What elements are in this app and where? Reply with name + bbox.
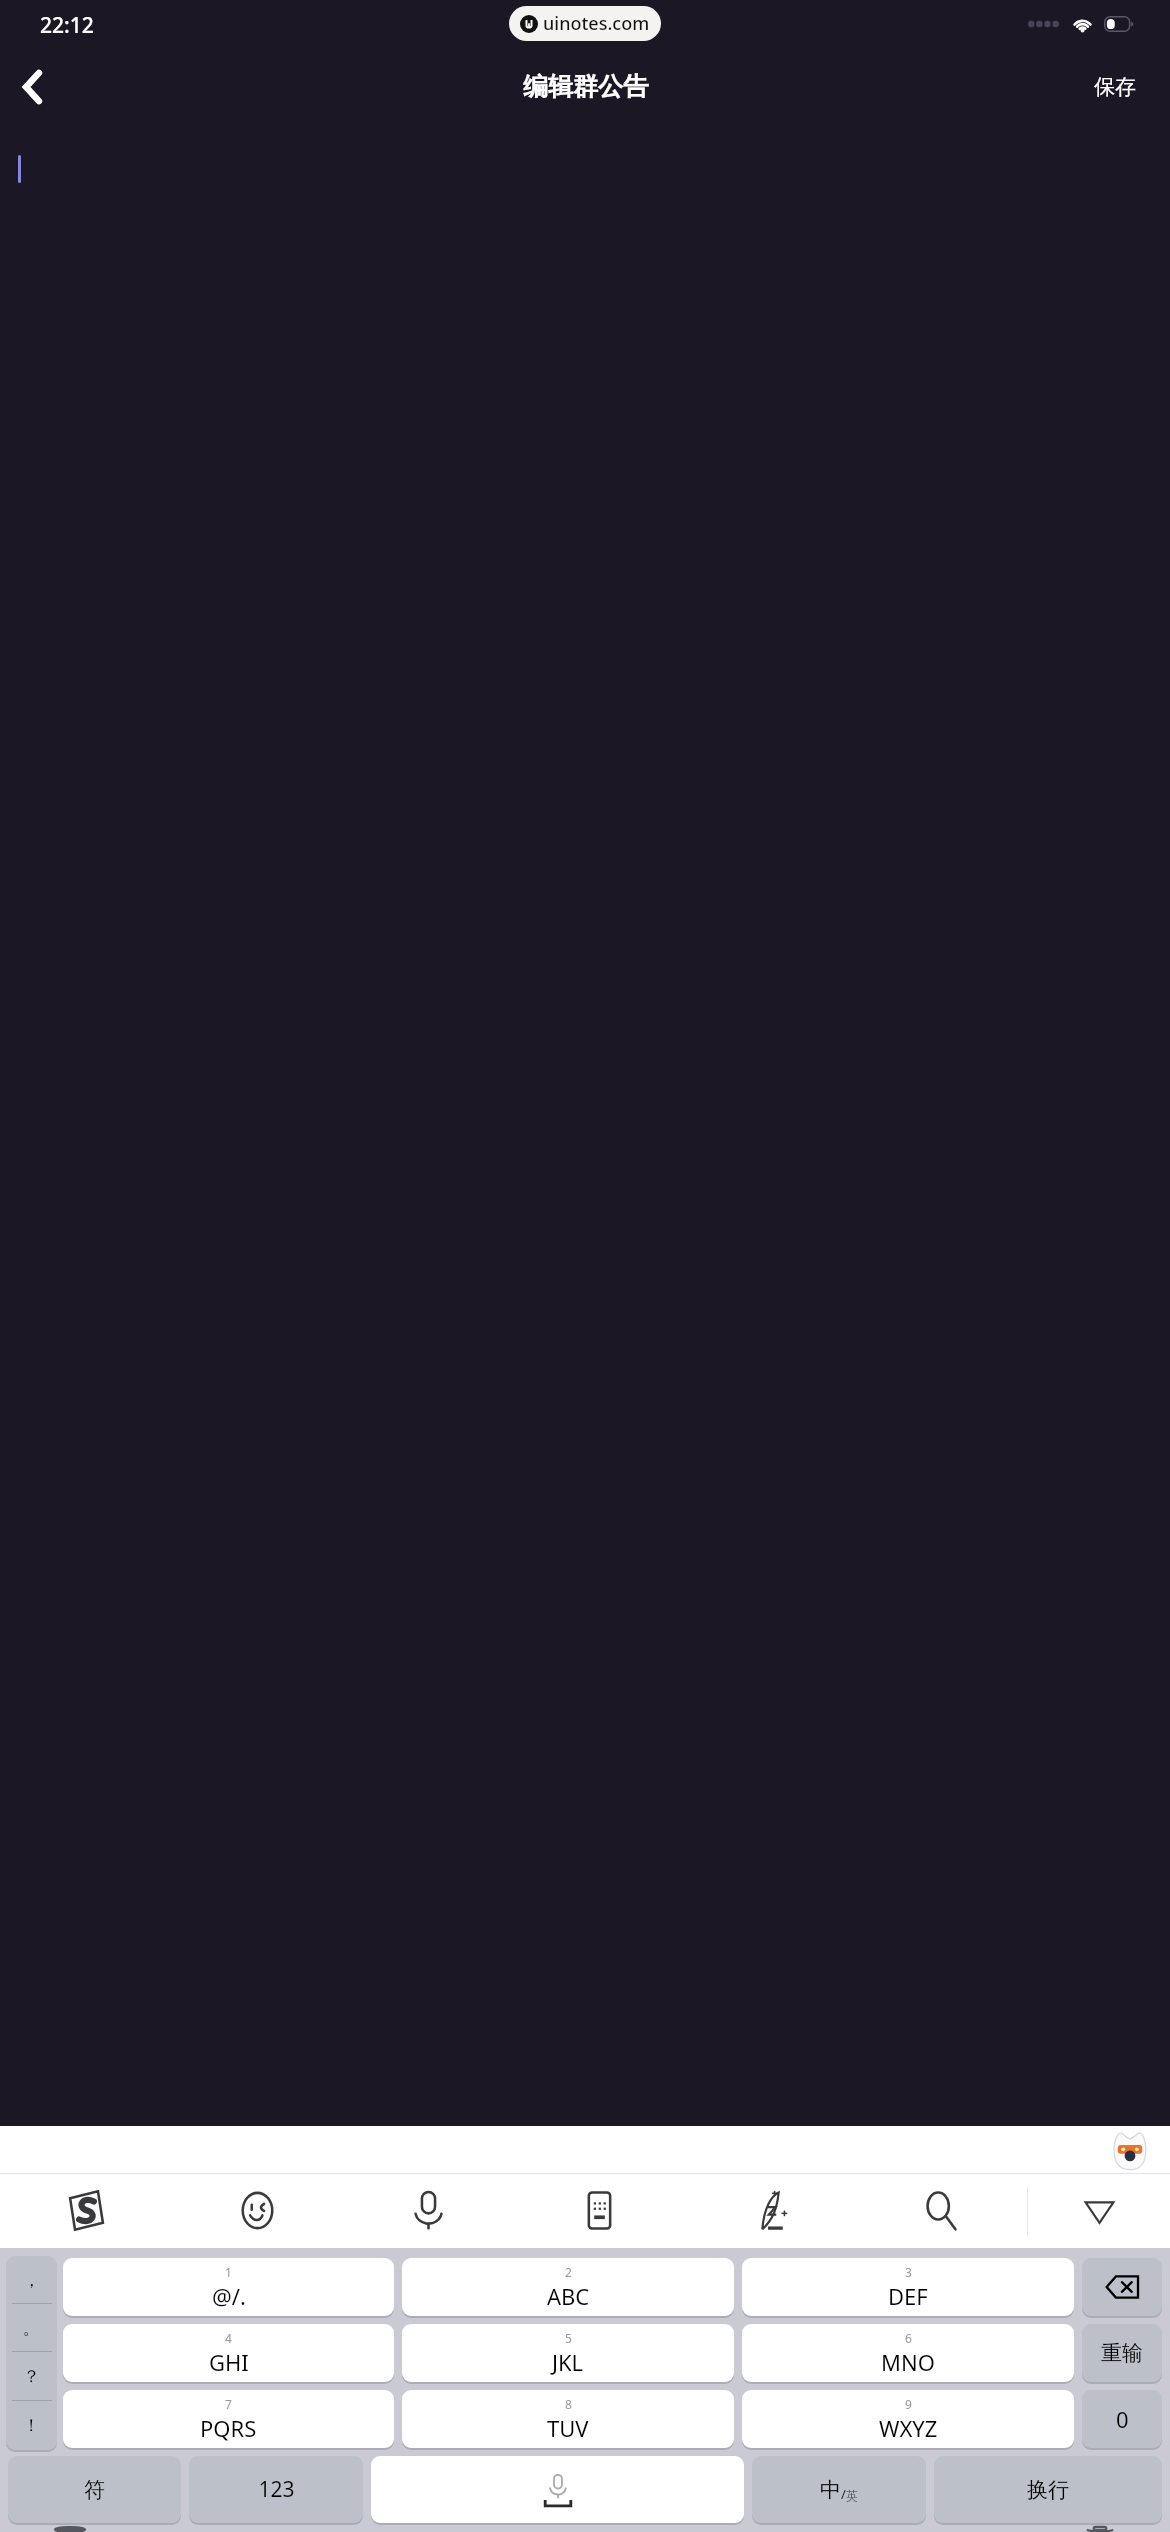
button[interactable]: 123	[189, 2456, 363, 2523]
button[interactable]: Back	[0, 55, 64, 119]
staticText: 9	[905, 2396, 912, 2412]
button[interactable]: 2	[402, 2258, 734, 2316]
button[interactable]: 1	[63, 2258, 394, 2316]
button[interactable]: Emoji	[172, 2173, 343, 2248]
button[interactable]: Sogou	[0, 2173, 172, 2248]
staticText: 保存	[1094, 74, 1136, 100]
button[interactable]: 4	[63, 2324, 394, 2382]
button[interactable]: Voice input	[1078, 2527, 1122, 2532]
staticText: 2	[565, 2264, 572, 2280]
staticText: 3	[905, 2264, 912, 2280]
button[interactable]: ？	[6, 2352, 57, 2401]
button[interactable]: Collapse keyboard	[1028, 2173, 1170, 2248]
button[interactable]: 0	[1082, 2390, 1162, 2448]
button[interactable]: 重输	[1082, 2324, 1162, 2382]
staticText: 符	[84, 2477, 105, 2503]
staticText: 7	[225, 2396, 232, 2412]
staticText: GHI	[209, 2347, 249, 2377]
staticText: uinotes.com	[543, 11, 650, 36]
staticText: PQRS	[200, 2413, 257, 2443]
staticText: 22:12	[40, 11, 94, 40]
staticText: 重输	[1101, 2340, 1143, 2366]
button[interactable]: 5	[402, 2324, 734, 2382]
button[interactable]: 。	[6, 2304, 57, 2352]
button[interactable]: ，	[6, 2256, 57, 2304]
staticText: 中	[820, 2477, 841, 2503]
staticText: ，	[23, 2270, 40, 2291]
staticText: ！	[23, 2415, 40, 2436]
staticText: 1	[225, 2264, 232, 2280]
button[interactable]: Space	[371, 2456, 744, 2523]
button[interactable]: Backspace	[1082, 2258, 1162, 2316]
staticText: 英	[846, 2488, 858, 2503]
button[interactable]: Voice input	[343, 2173, 514, 2248]
staticText: 6	[905, 2330, 912, 2346]
staticText: 4	[225, 2330, 232, 2346]
button[interactable]: 7	[63, 2390, 394, 2448]
staticText: @/.	[212, 2281, 246, 2311]
staticText: TUV	[547, 2413, 589, 2443]
staticText: MNO	[881, 2347, 935, 2377]
staticText: 8	[565, 2396, 572, 2412]
button[interactable]: Sogou assistant	[1112, 2129, 1148, 2171]
button[interactable]: ！	[6, 2401, 57, 2450]
button[interactable]: 中	[752, 2456, 926, 2523]
button[interactable]: Handwriting	[685, 2173, 856, 2248]
button[interactable]: 保存	[1084, 68, 1146, 106]
staticText: 编辑群公告	[523, 71, 648, 102]
staticText: 0	[1116, 2404, 1129, 2434]
button[interactable]: 8	[402, 2390, 734, 2448]
staticText: WXYZ	[879, 2413, 938, 2443]
staticText: 123	[258, 2475, 295, 2504]
button[interactable]: Switch language	[48, 2527, 92, 2532]
button[interactable]: 符	[8, 2456, 181, 2523]
staticText: JKL	[552, 2347, 584, 2377]
staticText: 换行	[1027, 2477, 1069, 2503]
staticText: DEF	[888, 2281, 928, 2311]
button[interactable]: 6	[742, 2324, 1074, 2382]
staticText: ？	[23, 2366, 40, 2387]
button[interactable]: 9	[742, 2390, 1074, 2448]
button[interactable]: Keyboard layout	[514, 2173, 685, 2248]
button[interactable]: Search	[856, 2173, 1027, 2248]
staticText: ABC	[547, 2281, 590, 2311]
button[interactable]: 3	[742, 2258, 1074, 2316]
staticText: /	[841, 2485, 846, 2503]
button[interactable]: 换行	[934, 2456, 1162, 2523]
staticText: 5	[565, 2330, 572, 2346]
staticText: 。	[23, 2318, 40, 2339]
